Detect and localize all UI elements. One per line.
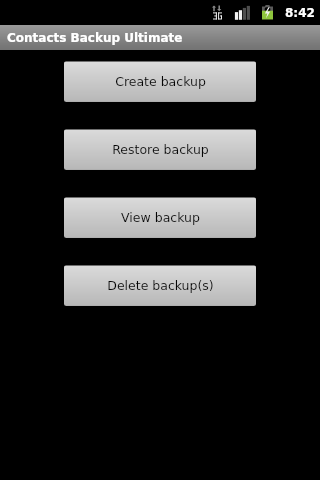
staticText: Restore backup — [112, 142, 209, 157]
button[interactable]: Delete backup(s) — [64, 265, 256, 306]
staticText: Create backup — [115, 74, 206, 89]
button[interactable]: View backup — [64, 197, 256, 238]
staticText: View backup — [121, 210, 200, 225]
staticText: Delete backup(s) — [107, 278, 214, 293]
button[interactable]: Create backup — [64, 61, 256, 102]
staticText: 8:42 — [285, 6, 315, 20]
staticText: Contacts Backup Ultimate — [7, 31, 183, 45]
button[interactable]: Restore backup — [64, 129, 256, 170]
